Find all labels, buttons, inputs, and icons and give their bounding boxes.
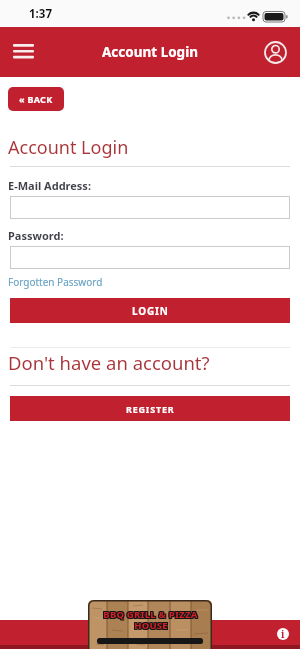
staticText: Account Login bbox=[102, 43, 198, 61]
staticText: BBQ GRILL & PIZZA bbox=[103, 607, 198, 620]
staticText: BBQ GRILL & PIZZA bbox=[102, 607, 197, 620]
staticText: HOUSE bbox=[134, 618, 168, 631]
button[interactable] bbox=[10, 196, 290, 219]
staticText: HOUSE bbox=[134, 619, 168, 632]
button[interactable]: REGISTER bbox=[10, 396, 290, 421]
staticText: i bbox=[281, 628, 285, 639]
staticText: HOUSE bbox=[134, 620, 168, 633]
staticText: REGISTER bbox=[126, 403, 175, 415]
staticText: HOUSE bbox=[135, 619, 169, 632]
staticText: BBQ GRILL & PIZZA bbox=[102, 609, 197, 622]
staticText: LOGIN bbox=[132, 304, 169, 318]
staticText: BBQ GRILL & PIZZA bbox=[104, 608, 199, 621]
staticText: BBQ GRILL & PIZZA bbox=[102, 608, 197, 621]
button[interactable]: BBQ GRILL & PIZZA bbox=[88, 600, 212, 649]
staticText: HOUSE bbox=[133, 620, 167, 633]
staticText: HOUSE bbox=[133, 618, 167, 631]
button[interactable] bbox=[264, 41, 287, 64]
staticText: HOUSE bbox=[133, 619, 167, 632]
staticText: BBQ GRILL & PIZZA bbox=[104, 607, 199, 620]
staticText: E-Mail Address: bbox=[8, 178, 91, 193]
staticText: BBQ GRILL & PIZZA bbox=[103, 609, 198, 622]
staticText: 1:37 bbox=[29, 6, 52, 22]
staticText: HOUSE bbox=[135, 618, 169, 631]
button[interactable]: Forgotten Password bbox=[8, 275, 103, 289]
button[interactable] bbox=[13, 44, 34, 60]
staticText: HOUSE bbox=[135, 620, 169, 633]
staticText: BBQ GRILL & PIZZA bbox=[104, 609, 199, 622]
staticText: Password: bbox=[8, 228, 64, 243]
button[interactable]: « BACK bbox=[8, 87, 64, 111]
button[interactable]: i bbox=[277, 628, 289, 640]
staticText: Don't have an account? bbox=[8, 350, 210, 375]
staticText: BBQ GRILL & PIZZA bbox=[103, 608, 198, 621]
staticText: « BACK bbox=[19, 93, 53, 105]
staticText: Account Login bbox=[8, 135, 129, 160]
button[interactable] bbox=[10, 246, 290, 269]
button[interactable]: LOGIN bbox=[10, 298, 290, 323]
